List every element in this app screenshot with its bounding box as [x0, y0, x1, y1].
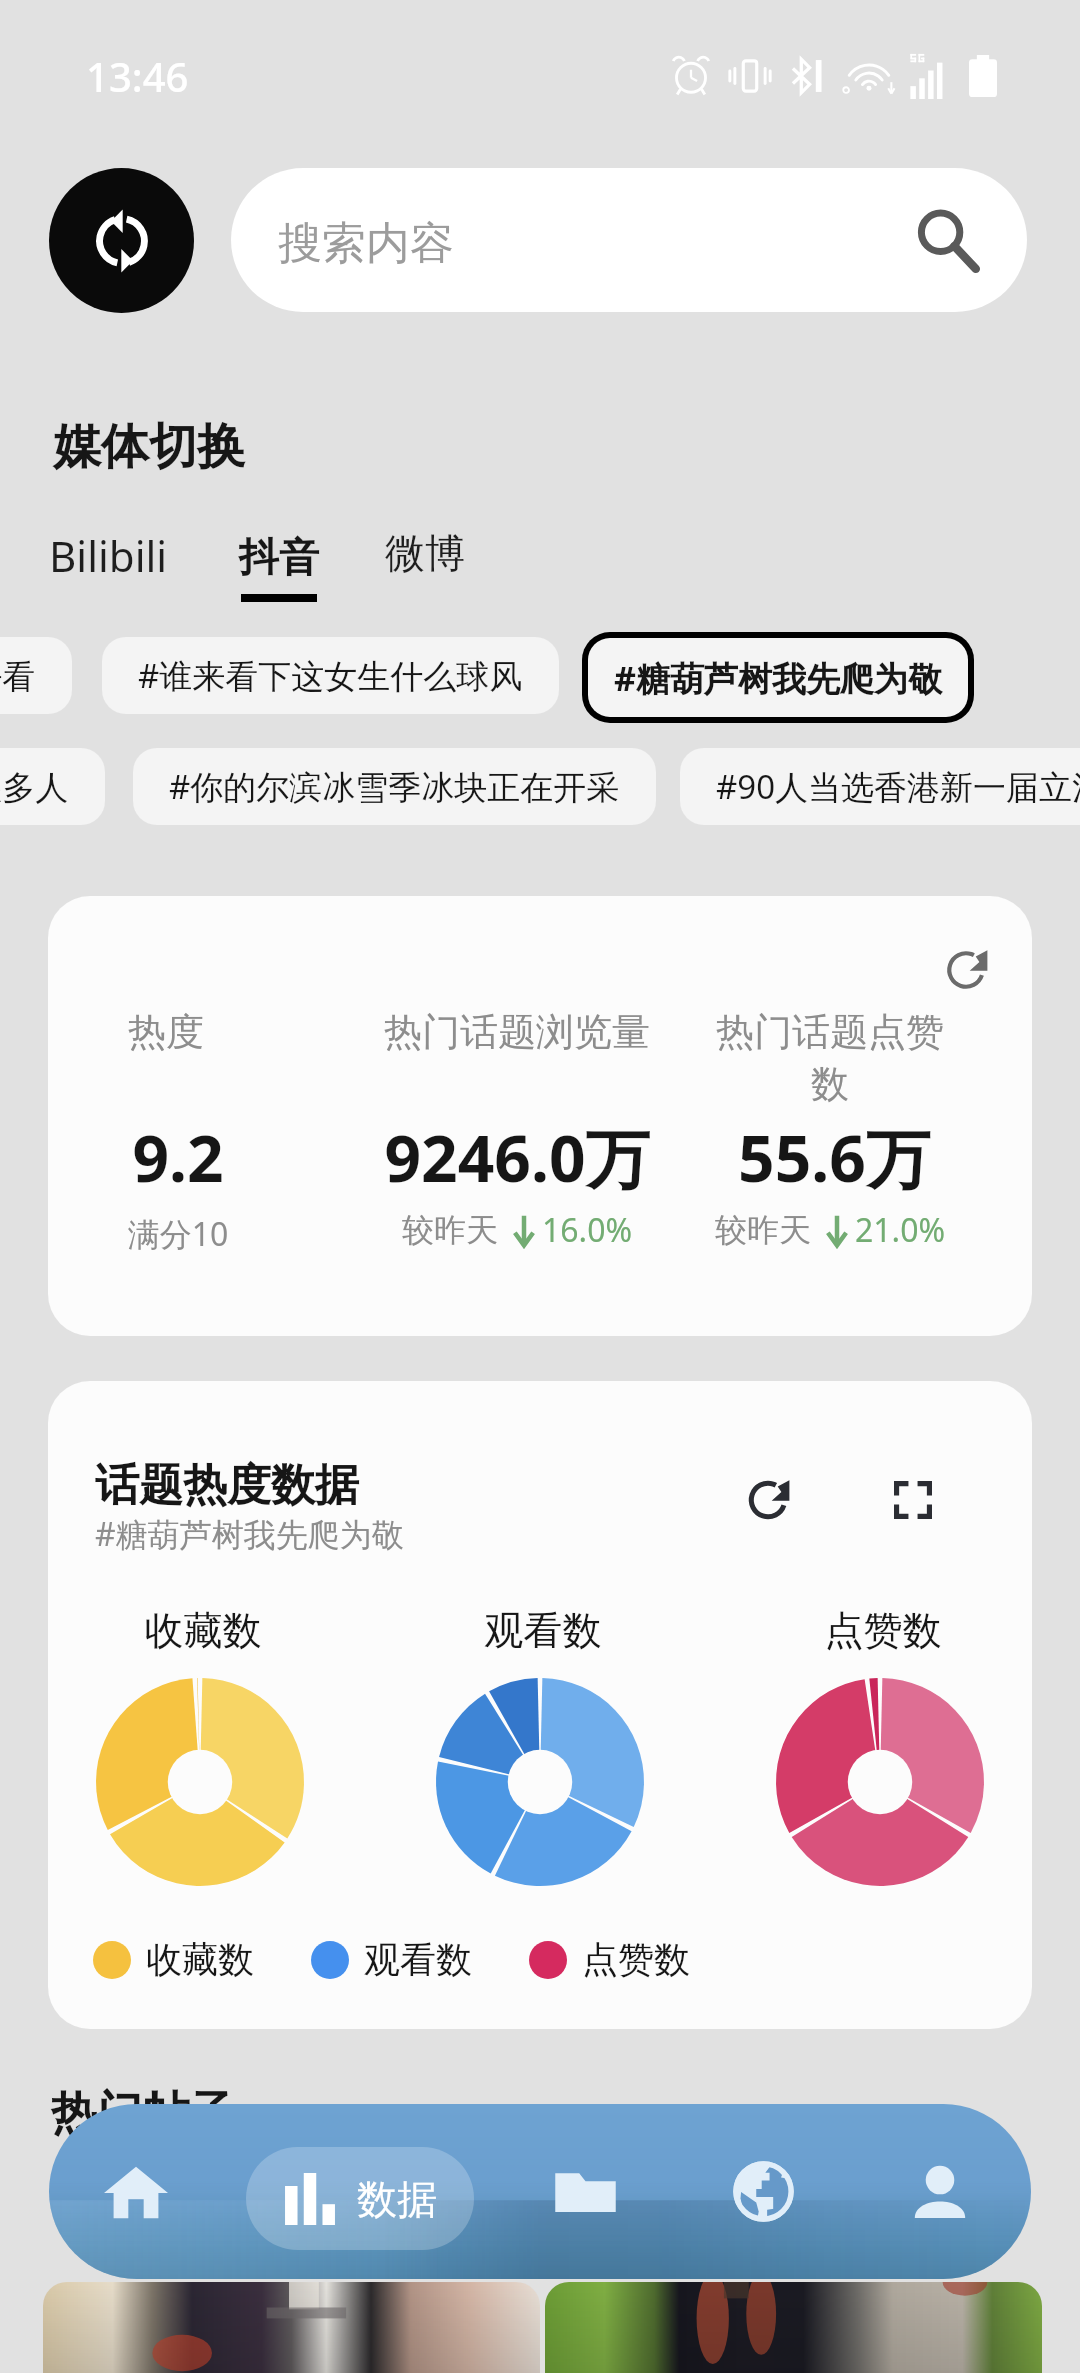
button[interactable]: 观看数 — [311, 1937, 472, 1982]
staticText: 话题热度数据 — [95, 1458, 359, 1513]
button[interactable]: Refresh chart — [746, 1478, 790, 1522]
button[interactable]: 收藏数 — [93, 1937, 254, 1982]
staticText: 观看数 — [364, 1937, 472, 1982]
button[interactable]: Profile — [865, 2129, 1015, 2254]
button[interactable]: Refresh stats — [944, 948, 988, 992]
staticText: 媒体切换 — [53, 417, 245, 477]
button[interactable]: #你的尔滨冰雪季冰块正在开采 — [133, 748, 656, 825]
staticText: 55.6万 — [686, 1114, 982, 1201]
button[interactable]: Home — [61, 2129, 211, 2254]
staticText: #糖葫芦树我先爬为敬 — [614, 655, 942, 701]
staticText: 13:46 — [86, 49, 189, 103]
button[interactable]: 微博 — [385, 528, 465, 578]
staticText: 21.0% — [855, 1208, 946, 1252]
staticText: 热门话题浏览量 — [367, 1008, 667, 1056]
button[interactable] — [43, 2282, 540, 2373]
staticText: #你的尔滨冰雪季冰块正在开采 — [169, 764, 620, 809]
staticText: 满分10 — [58, 1212, 298, 1256]
button[interactable]: 点赞数 — [529, 1937, 690, 1982]
staticText: 数据 — [357, 2174, 437, 2224]
staticText: 微博 — [385, 528, 465, 578]
button[interactable]: Files — [510, 2129, 660, 2254]
staticText: 搜索内容 — [278, 216, 454, 271]
button[interactable]: Bilibili — [49, 527, 168, 584]
staticText: 热度 — [48, 1008, 286, 1056]
button[interactable]: #糖葫芦树我先爬为敬 — [588, 638, 968, 717]
staticText: 点赞数 — [783, 1606, 983, 1655]
staticText: 9.2 — [58, 1114, 298, 1201]
staticText: #糖葫芦树我先爬为敬 — [95, 1512, 404, 1556]
staticText: 较昨天 — [715, 1210, 811, 1250]
staticText: #90人当选香港新一届立法会 — [716, 764, 1080, 809]
button[interactable]: 数据 — [246, 2147, 474, 2250]
staticText: 收藏数 — [146, 1937, 254, 1982]
button[interactable]: Explore — [688, 2126, 838, 2256]
staticText: 较昨天 — [402, 1210, 498, 1250]
button[interactable]: 抖音 — [239, 532, 319, 602]
button[interactable]: 搜索内容 — [231, 168, 1027, 312]
button[interactable]: #很多人 — [0, 748, 105, 825]
button[interactable]: #这个视频真好看 — [0, 637, 72, 714]
staticText: 抖音 — [239, 532, 319, 582]
other: Search — [915, 208, 979, 272]
staticText: #很多人 — [0, 764, 69, 809]
button[interactable]: #90人当选香港新一届立法会 — [680, 748, 1080, 825]
staticText: 热门帖子 — [51, 2085, 235, 2143]
staticText: 16.0% — [542, 1208, 633, 1252]
staticText: 观看数 — [443, 1606, 643, 1655]
button[interactable]: Refresh stats — [48, 896, 1032, 1336]
staticText: 点赞数 — [582, 1937, 690, 1982]
button[interactable] — [545, 2282, 1042, 2373]
staticText: 收藏数 — [103, 1606, 303, 1655]
staticText: #这个视频真好看 — [0, 653, 36, 698]
staticText: 9246.0万 — [347, 1114, 687, 1201]
button[interactable]: Fullscreen — [894, 1481, 932, 1519]
button[interactable]: #谁来看下这女生什么球风 — [102, 637, 559, 714]
staticText: #谁来看下这女生什么球风 — [138, 653, 523, 698]
staticText: Bilibili — [49, 527, 168, 584]
staticText: 热门话题点赞数 — [702, 1008, 958, 1108]
button[interactable]: Sync — [49, 168, 194, 313]
